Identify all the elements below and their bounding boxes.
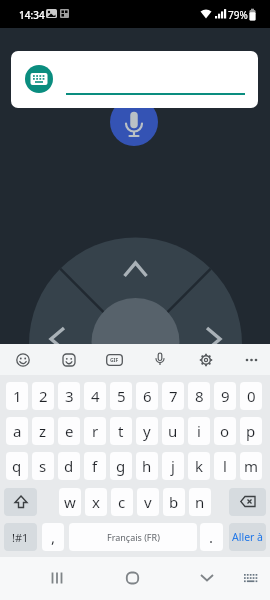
staticText: h — [142, 456, 152, 476]
staticText: x — [92, 492, 100, 512]
button[interactable]: n — [189, 488, 211, 516]
staticText: a — [13, 421, 22, 441]
staticText: e — [65, 421, 74, 441]
button[interactable]: GIF — [106, 354, 123, 366]
button[interactable]: j — [162, 452, 184, 480]
button[interactable] — [244, 574, 258, 583]
button[interactable] — [4, 488, 37, 516]
staticText: 79% — [228, 8, 248, 22]
button[interactable] — [126, 572, 139, 584]
button[interactable] — [199, 353, 213, 367]
button[interactable]: m — [240, 452, 262, 480]
staticText: m — [244, 456, 259, 476]
staticText: q — [12, 456, 22, 476]
button[interactable]: 7 — [162, 382, 184, 410]
button[interactable]: q — [6, 452, 28, 480]
button[interactable]: 3 — [58, 382, 80, 410]
button[interactable] — [153, 352, 167, 366]
staticText: 4 — [91, 386, 100, 406]
button[interactable]: l — [214, 452, 236, 480]
staticText: k — [195, 456, 204, 476]
staticText: 9 — [221, 386, 230, 406]
staticText: c — [118, 492, 126, 512]
button[interactable]: 1 — [6, 382, 28, 410]
button[interactable]: b — [163, 488, 185, 516]
staticText: 6 — [143, 386, 152, 406]
button[interactable]: r — [84, 417, 106, 445]
button[interactable]: k — [188, 452, 210, 480]
button[interactable]: c — [111, 488, 133, 516]
staticText: !#1 — [12, 530, 29, 545]
button[interactable]: p — [240, 417, 262, 445]
button[interactable] — [110, 98, 158, 146]
staticText: Aller à — [232, 530, 264, 544]
staticText: f — [92, 456, 98, 476]
button[interactable]: 2 — [32, 382, 54, 410]
button[interactable] — [200, 574, 214, 582]
button[interactable]: f — [84, 452, 106, 480]
staticText: 2 — [39, 386, 48, 406]
staticText: u — [168, 421, 178, 441]
staticText: z — [39, 421, 47, 441]
staticText: v — [144, 492, 152, 512]
button[interactable]: . — [200, 523, 223, 551]
staticText: l — [223, 456, 227, 476]
staticText: w — [64, 492, 76, 512]
button[interactable]: , — [42, 523, 64, 551]
button[interactable]: v — [137, 488, 159, 516]
button[interactable]: y — [136, 417, 158, 445]
button[interactable]: 4 — [84, 382, 106, 410]
staticText: 14:34 — [19, 8, 45, 22]
staticText: g — [116, 456, 126, 476]
staticText: t — [118, 421, 124, 441]
staticText: 0 — [247, 386, 256, 406]
staticText: d — [64, 456, 74, 476]
staticText: . — [209, 527, 214, 547]
button[interactable]: t — [110, 417, 132, 445]
button[interactable]: 5 — [110, 382, 132, 410]
staticText: 3 — [65, 386, 74, 406]
staticText: 7 — [169, 386, 178, 406]
staticText: Français (FR) — [107, 531, 160, 543]
staticText: , — [51, 527, 56, 547]
button[interactable]: a — [6, 417, 28, 445]
staticText: y — [143, 421, 151, 441]
button[interactable] — [245, 357, 259, 363]
button[interactable]: 6 — [136, 382, 158, 410]
button[interactable]: z — [32, 417, 54, 445]
button[interactable]: 9 — [214, 382, 236, 410]
staticText: j — [171, 456, 175, 476]
button[interactable]: Aller à — [229, 523, 266, 551]
button[interactable]: w — [59, 488, 81, 516]
staticText: r — [92, 421, 99, 441]
staticText: o — [220, 421, 230, 441]
button[interactable] — [229, 488, 266, 516]
staticText: 8 — [195, 386, 204, 406]
button[interactable]: h — [136, 452, 158, 480]
button[interactable]: o — [214, 417, 236, 445]
staticText: b — [169, 492, 179, 512]
button[interactable]: x — [85, 488, 107, 516]
button[interactable] — [62, 353, 76, 367]
button[interactable]: d — [58, 452, 80, 480]
button[interactable] — [16, 353, 30, 367]
staticText: GIF — [110, 357, 119, 364]
button[interactable]: 8 — [188, 382, 210, 410]
button[interactable]: g — [110, 452, 132, 480]
button[interactable]: s — [32, 452, 54, 480]
staticText: n — [195, 492, 205, 512]
button[interactable]: u — [162, 417, 184, 445]
button[interactable]: Français (FR) — [69, 523, 197, 551]
button[interactable]: e — [58, 417, 80, 445]
button[interactable]: i — [188, 417, 210, 445]
staticText: p — [246, 421, 256, 441]
button[interactable] — [11, 51, 258, 108]
staticText: i — [197, 421, 201, 441]
button[interactable] — [51, 572, 65, 584]
staticText: 5 — [117, 386, 126, 406]
button[interactable]: !#1 — [4, 523, 37, 551]
staticText: 1 — [13, 386, 22, 406]
button[interactable]: 0 — [240, 382, 262, 410]
staticText: s — [39, 456, 47, 476]
